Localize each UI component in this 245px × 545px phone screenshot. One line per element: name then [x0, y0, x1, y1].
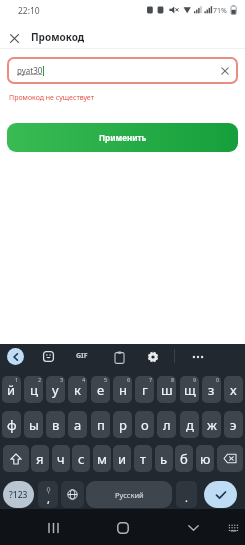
button[interactable]: [224, 519, 242, 537]
button[interactable]: х: [224, 376, 243, 403]
staticText: м: [97, 450, 107, 468]
staticText: ч: [57, 450, 65, 468]
staticText: ю: [200, 450, 211, 468]
button[interactable]: [42, 518, 64, 538]
staticText: 7: [149, 376, 153, 383]
button[interactable]: [217, 445, 243, 472]
button[interactable]: в: [46, 411, 65, 438]
button[interactable]: з: [202, 376, 221, 403]
button[interactable]: р: [113, 411, 132, 438]
button[interactable]: ц: [24, 376, 43, 403]
staticText: Применить: [99, 132, 147, 143]
staticText: 5: [104, 376, 108, 383]
button[interactable]: а: [68, 411, 87, 438]
button[interactable]: ш: [157, 376, 176, 403]
staticText: 8: [171, 376, 175, 383]
button[interactable]: [186, 348, 210, 366]
button[interactable]: [112, 518, 134, 538]
button[interactable]: ?123: [3, 481, 34, 508]
button[interactable]: [3, 445, 29, 472]
button[interactable]: э: [224, 411, 243, 438]
button[interactable]: м: [93, 445, 111, 472]
staticText: в: [52, 416, 60, 434]
button[interactable]: г: [135, 376, 154, 403]
staticText: е: [97, 381, 105, 399]
staticText: ,: [47, 491, 50, 506]
button[interactable]: щ: [180, 376, 199, 403]
staticText: я: [36, 450, 44, 468]
button[interactable]: [182, 518, 204, 538]
button[interactable]: ы: [24, 411, 43, 438]
staticText: .: [185, 490, 188, 505]
staticText: д: [186, 416, 194, 434]
staticText: Русский: [115, 490, 144, 500]
staticText: pyat30: [17, 65, 43, 76]
staticText: 4: [82, 376, 86, 383]
staticText: г: [142, 381, 148, 399]
button[interactable]: [7, 348, 24, 365]
button[interactable]: л: [157, 411, 176, 438]
button[interactable]: .: [176, 481, 197, 508]
staticText: с: [78, 450, 85, 468]
staticText: к: [74, 381, 81, 399]
button[interactable]: т: [134, 445, 152, 472]
staticText: й: [7, 381, 16, 399]
button[interactable]: ч: [52, 445, 70, 472]
staticText: н: [119, 381, 127, 399]
staticText: а: [74, 416, 82, 434]
staticText: 9: [193, 376, 197, 383]
staticText: л: [163, 416, 171, 434]
button[interactable]: [39, 347, 57, 365]
button[interactable]: у: [46, 376, 65, 403]
button[interactable]: [215, 61, 235, 81]
staticText: п: [97, 416, 105, 434]
staticText: р: [119, 416, 127, 434]
staticText: х: [230, 381, 237, 399]
button[interactable]: о: [135, 411, 154, 438]
staticText: ?123: [9, 489, 28, 501]
button[interactable]: ь: [155, 445, 173, 472]
button[interactable]: к: [68, 376, 87, 403]
staticText: у: [52, 381, 59, 399]
button[interactable]: ф: [2, 411, 21, 438]
button[interactable]: п: [91, 411, 110, 438]
button[interactable]: й: [2, 376, 21, 403]
button[interactable]: д: [180, 411, 199, 438]
staticText: ы: [29, 416, 39, 434]
button[interactable]: [4, 27, 25, 49]
button[interactable]: pyat30: [7, 57, 238, 84]
button[interactable]: [144, 348, 162, 366]
button[interactable]: Русский: [86, 481, 172, 508]
staticText: 1: [15, 376, 19, 383]
staticText: 22:10: [18, 5, 40, 17]
button[interactable]: ю: [196, 445, 214, 472]
staticText: з: [208, 381, 215, 399]
staticText: э: [230, 416, 237, 434]
staticText: о: [141, 416, 149, 434]
button[interactable]: GIF: [72, 347, 92, 365]
button[interactable]: ,: [38, 481, 58, 508]
button[interactable]: я: [31, 445, 49, 472]
staticText: 0: [216, 376, 220, 383]
button[interactable]: ж: [202, 411, 221, 438]
staticText: ж: [207, 416, 217, 434]
button[interactable]: е: [91, 376, 110, 403]
button[interactable]: и: [113, 445, 131, 472]
button[interactable]: б: [175, 445, 193, 472]
button[interactable]: [204, 481, 237, 508]
staticText: ш: [161, 381, 173, 399]
button[interactable]: с: [72, 445, 90, 472]
button[interactable]: н: [113, 376, 132, 403]
staticText: GIF: [76, 351, 88, 361]
staticText: ь: [160, 450, 168, 468]
staticText: 6: [127, 376, 131, 383]
staticText: 3: [60, 376, 64, 383]
button[interactable]: [61, 481, 84, 508]
staticText: 71%: [213, 6, 227, 16]
staticText: ц: [30, 381, 38, 399]
staticText: т: [140, 450, 147, 468]
button[interactable]: Применить: [7, 123, 238, 152]
staticText: щ: [184, 381, 196, 399]
staticText: Промокод: [31, 30, 85, 44]
button[interactable]: [110, 348, 128, 366]
